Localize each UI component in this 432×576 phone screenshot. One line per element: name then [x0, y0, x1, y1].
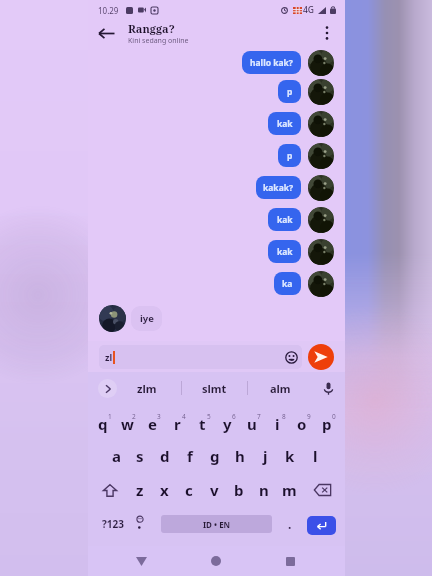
- button[interactable]: alm: [253, 372, 307, 404]
- staticText: slmt: [202, 381, 227, 396]
- button[interactable]: w: [115, 408, 139, 440]
- staticText: 2: [132, 412, 136, 421]
- button[interactable]: Back: [94, 21, 118, 45]
- button[interactable]: Enter: [307, 516, 336, 535]
- button[interactable]: Back: [127, 547, 155, 575]
- button[interactable]: zlm: [120, 372, 174, 404]
- staticText: ka: [282, 278, 293, 290]
- button[interactable]: f: [178, 440, 202, 472]
- staticText: r: [174, 414, 181, 434]
- staticText: f: [187, 446, 193, 466]
- button[interactable]: Recent apps: [276, 547, 304, 575]
- button[interactable]: c: [177, 474, 201, 506]
- button[interactable]: ID • EN: [161, 515, 272, 533]
- button[interactable]: kak: [268, 208, 301, 231]
- button[interactable]: m: [277, 474, 301, 506]
- staticText: zlm: [137, 381, 157, 396]
- staticText: h: [235, 446, 245, 466]
- button[interactable]: iye: [131, 306, 162, 331]
- button[interactable]: Home: [202, 547, 230, 575]
- staticText: 3: [157, 412, 161, 421]
- staticText: p: [287, 86, 293, 98]
- staticText: p: [322, 414, 332, 434]
- button[interactable]: v: [202, 474, 226, 506]
- staticText: m: [282, 480, 297, 500]
- staticText: 9: [307, 412, 311, 421]
- button[interactable]: x: [152, 474, 176, 506]
- button[interactable]: e: [140, 408, 164, 440]
- staticText: k: [285, 446, 295, 466]
- staticText: 5: [207, 412, 211, 421]
- button[interactable]: slmt: [187, 372, 241, 404]
- button[interactable]: h: [228, 440, 252, 472]
- staticText: kak: [277, 246, 293, 258]
- staticText: s: [136, 446, 144, 466]
- staticText: ID • EN: [203, 519, 231, 530]
- staticText: t: [199, 414, 206, 434]
- button[interactable]: Emoji and comma: [128, 508, 152, 540]
- button[interactable]: j: [253, 440, 277, 472]
- staticText: 8: [282, 412, 286, 421]
- button[interactable]: p: [315, 408, 339, 440]
- button[interactable]: t: [190, 408, 214, 440]
- button[interactable]: z: [128, 474, 152, 506]
- button[interactable]: zl: [99, 345, 302, 369]
- staticText: o: [297, 414, 307, 434]
- button[interactable]: b: [227, 474, 251, 506]
- staticText: d: [160, 446, 170, 466]
- staticText: kakak?: [263, 182, 294, 194]
- button[interactable]: kakak?: [256, 176, 301, 199]
- staticText: kak: [277, 118, 293, 130]
- button[interactable]: ka: [274, 272, 301, 295]
- button[interactable]: y: [215, 408, 239, 440]
- staticText: 6: [232, 412, 236, 421]
- staticText: b: [234, 480, 244, 500]
- button[interactable]: s: [128, 440, 152, 472]
- staticText: n: [259, 480, 269, 500]
- button[interactable]: Voice input: [318, 378, 338, 398]
- button[interactable]: l: [303, 440, 327, 472]
- button[interactable]: Backspace: [308, 474, 336, 506]
- staticText: .: [288, 516, 292, 532]
- button[interactable]: a: [104, 440, 128, 472]
- button[interactable]: i: [265, 408, 289, 440]
- staticText: ?123: [102, 517, 124, 531]
- staticText: kak: [277, 214, 293, 226]
- button[interactable]: r: [165, 408, 189, 440]
- button[interactable]: Shift: [96, 474, 124, 506]
- button[interactable]: kak: [268, 240, 301, 263]
- button[interactable]: p: [278, 80, 301, 103]
- button[interactable]: More suggestions: [98, 379, 117, 398]
- button[interactable]: hallo kak?: [242, 51, 301, 74]
- button[interactable]: o: [290, 408, 314, 440]
- button[interactable]: kak: [268, 112, 301, 135]
- button[interactable]: ?123: [98, 508, 128, 540]
- staticText: e: [148, 414, 157, 434]
- staticText: q: [98, 414, 108, 434]
- button[interactable]: u: [240, 408, 264, 440]
- button[interactable]: q: [91, 408, 115, 440]
- button[interactable]: g: [203, 440, 227, 472]
- staticText: l: [313, 446, 318, 466]
- staticText: u: [247, 414, 257, 434]
- staticText: g: [210, 446, 220, 466]
- staticText: Rangga?: [128, 21, 175, 36]
- staticText: y: [223, 414, 232, 434]
- staticText: p: [287, 150, 293, 162]
- staticText: z: [136, 480, 144, 500]
- button[interactable]: .: [280, 508, 300, 540]
- button[interactable]: d: [153, 440, 177, 472]
- staticText: alm: [270, 381, 291, 396]
- staticText: i: [275, 414, 280, 434]
- button[interactable]: n: [252, 474, 276, 506]
- staticText: j: [263, 446, 268, 466]
- staticText: c: [185, 480, 193, 500]
- button[interactable]: More options: [318, 24, 336, 42]
- button[interactable]: p: [278, 144, 301, 167]
- staticText: v: [210, 480, 219, 500]
- staticText: 4: [182, 412, 186, 421]
- button[interactable]: k: [278, 440, 302, 472]
- button[interactable]: Emoji: [284, 350, 298, 364]
- staticText: 10.29: [98, 5, 119, 16]
- button[interactable]: Send: [308, 344, 334, 370]
